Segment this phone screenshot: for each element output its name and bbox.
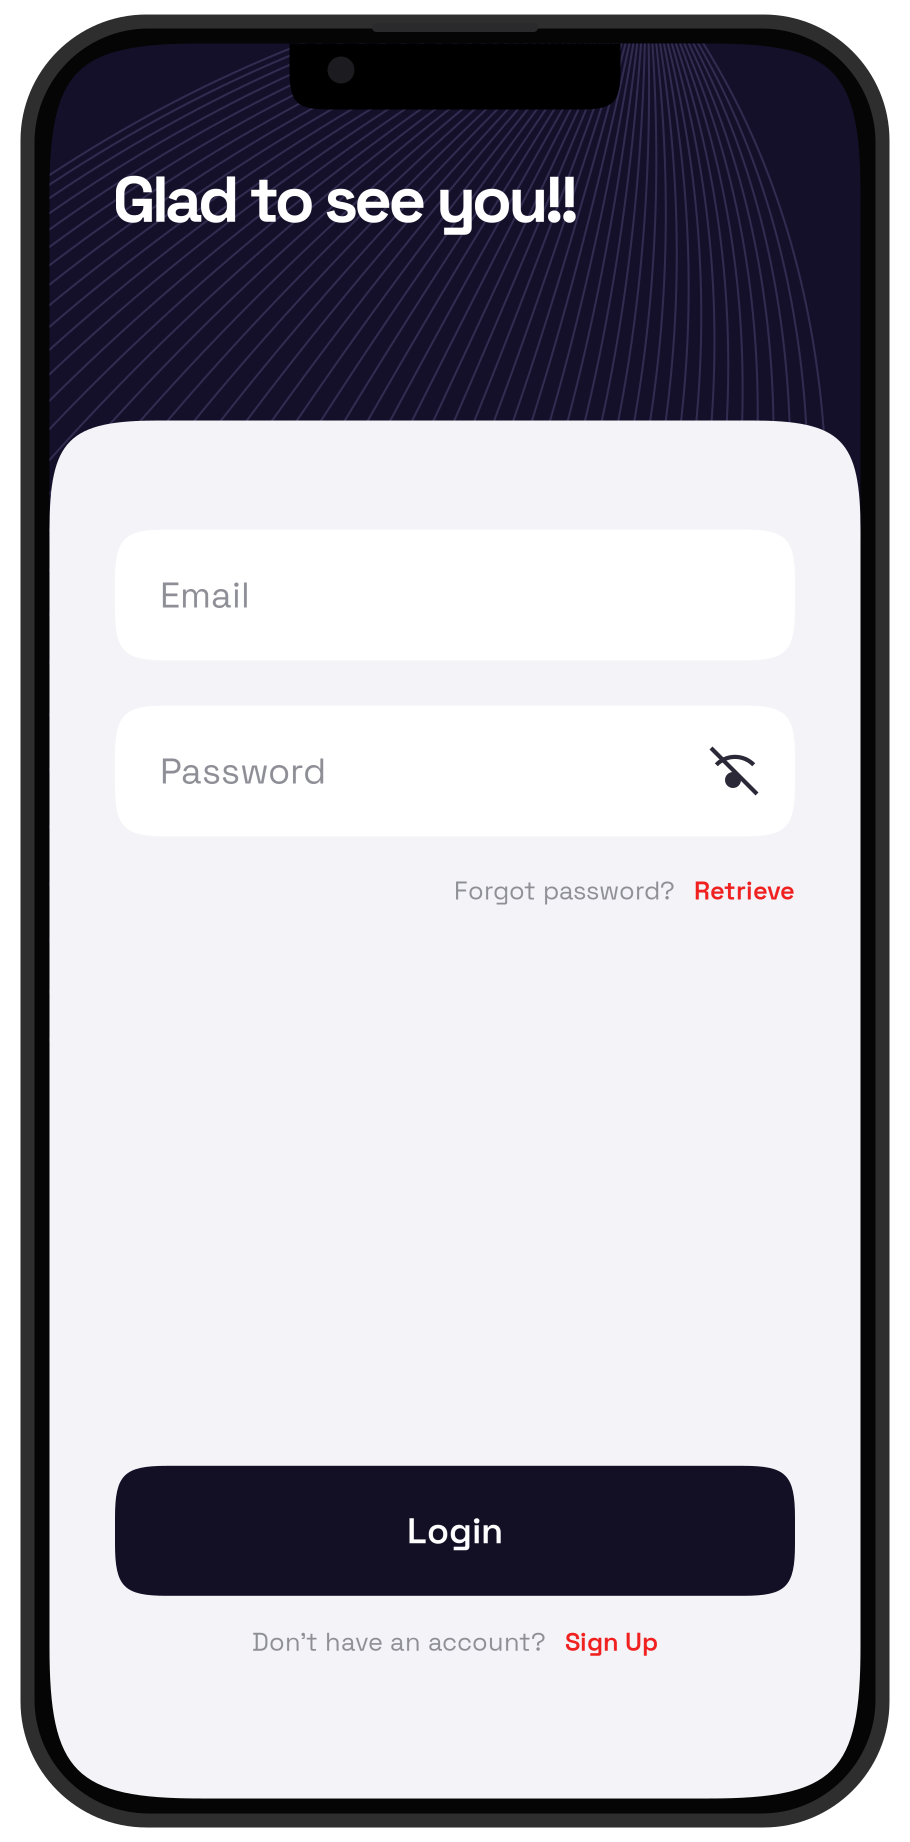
staticText: Glad to see you!! [112,157,579,241]
staticText: Login [407,1508,503,1554]
button[interactable]: Show password [709,746,759,796]
button[interactable]: Sign Up [565,1626,658,1658]
button[interactable]: Login [115,1466,795,1596]
staticText: Email [160,572,250,618]
staticText: Forgot password? [454,874,675,907]
staticText: Sign Up [565,1626,658,1658]
staticText: Don’t have an account? [252,1626,546,1658]
button[interactable]: Retrieve [694,874,795,907]
staticText: Retrieve [694,874,795,907]
staticText: Password [160,748,326,794]
